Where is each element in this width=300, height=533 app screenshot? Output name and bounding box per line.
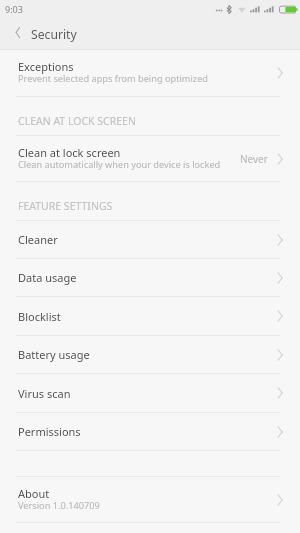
staticText: Cleaner <box>18 232 277 247</box>
button[interactable]: About <box>0 477 300 522</box>
staticText: Battery usage <box>18 347 277 362</box>
staticText: Version 1.0.140709 <box>18 499 100 512</box>
staticText: CLEAN AT LOCK SCREEN <box>18 114 136 128</box>
staticText: Blocklist <box>18 309 277 324</box>
staticText: Clean at lock screen <box>18 145 121 160</box>
staticText: FEATURE SETTINGS <box>18 199 113 213</box>
button[interactable]: Data usage <box>0 259 300 296</box>
staticText: Never <box>240 152 268 166</box>
staticText: Permissions <box>18 424 277 439</box>
button[interactable]: Permissions <box>0 413 300 450</box>
staticText: About <box>18 486 50 501</box>
button[interactable]: Back <box>0 19 34 50</box>
staticText: Virus scan <box>18 386 277 401</box>
button[interactable]: Exceptions <box>0 50 300 96</box>
button[interactable]: Virus scan <box>0 374 300 412</box>
staticText: 9:03 <box>5 3 23 15</box>
button[interactable]: Blocklist <box>0 297 300 335</box>
staticText: Clean automatically when your device is … <box>18 158 221 171</box>
staticText: Security <box>31 26 77 43</box>
staticText: Exceptions <box>18 59 74 74</box>
button[interactable]: Clean at lock screen <box>0 136 300 181</box>
button[interactable]: Battery usage <box>0 336 300 373</box>
button[interactable]: Cleaner <box>0 221 300 258</box>
staticText: Prevent selected apps from being optimiz… <box>18 72 208 85</box>
staticText: Data usage <box>18 270 277 285</box>
